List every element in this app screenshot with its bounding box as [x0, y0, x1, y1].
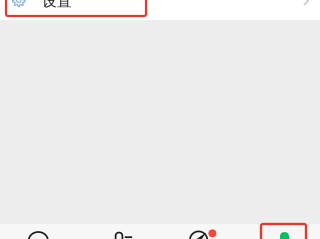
button[interactable]: Discover: [160, 224, 240, 239]
button[interactable]: Chats: [0, 224, 80, 239]
staticText: 设置: [42, 0, 72, 10]
button[interactable]: Me: [240, 224, 320, 239]
button[interactable]: Contacts: [80, 224, 160, 239]
button[interactable]: 设置: [0, 0, 320, 20]
